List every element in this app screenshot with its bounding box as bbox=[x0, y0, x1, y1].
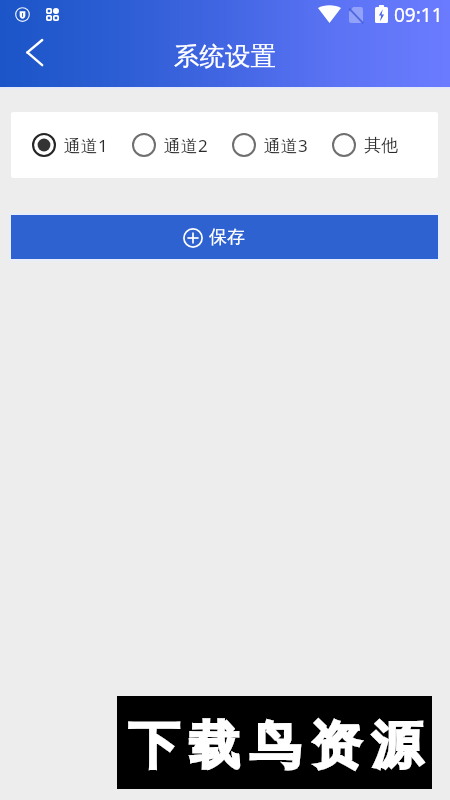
button[interactable]: 其他 bbox=[332, 133, 398, 157]
button[interactable]: 通道3 bbox=[232, 133, 308, 157]
staticText: 通道1 bbox=[64, 134, 108, 157]
staticText: 其他 bbox=[364, 135, 398, 156]
staticText: 保存 bbox=[209, 226, 245, 249]
button[interactable]: 通道2 bbox=[132, 133, 208, 157]
other: Battery charging bbox=[375, 5, 388, 23]
staticText: 系统设置 bbox=[174, 40, 276, 72]
other: No SIM card bbox=[349, 7, 363, 23]
staticText: 通道2 bbox=[164, 134, 208, 157]
other: Security bbox=[15, 7, 30, 22]
button[interactable]: Back bbox=[11, 31, 58, 74]
staticText: 通道3 bbox=[264, 134, 308, 157]
staticText: 09:11 bbox=[394, 2, 443, 28]
button[interactable]: 保存 bbox=[11, 215, 438, 259]
other: Wi-Fi bbox=[318, 6, 341, 23]
staticText: 下载鸟资源 bbox=[123, 714, 427, 778]
button[interactable]: 通道1 bbox=[32, 133, 108, 157]
other: Apps bbox=[46, 8, 59, 21]
